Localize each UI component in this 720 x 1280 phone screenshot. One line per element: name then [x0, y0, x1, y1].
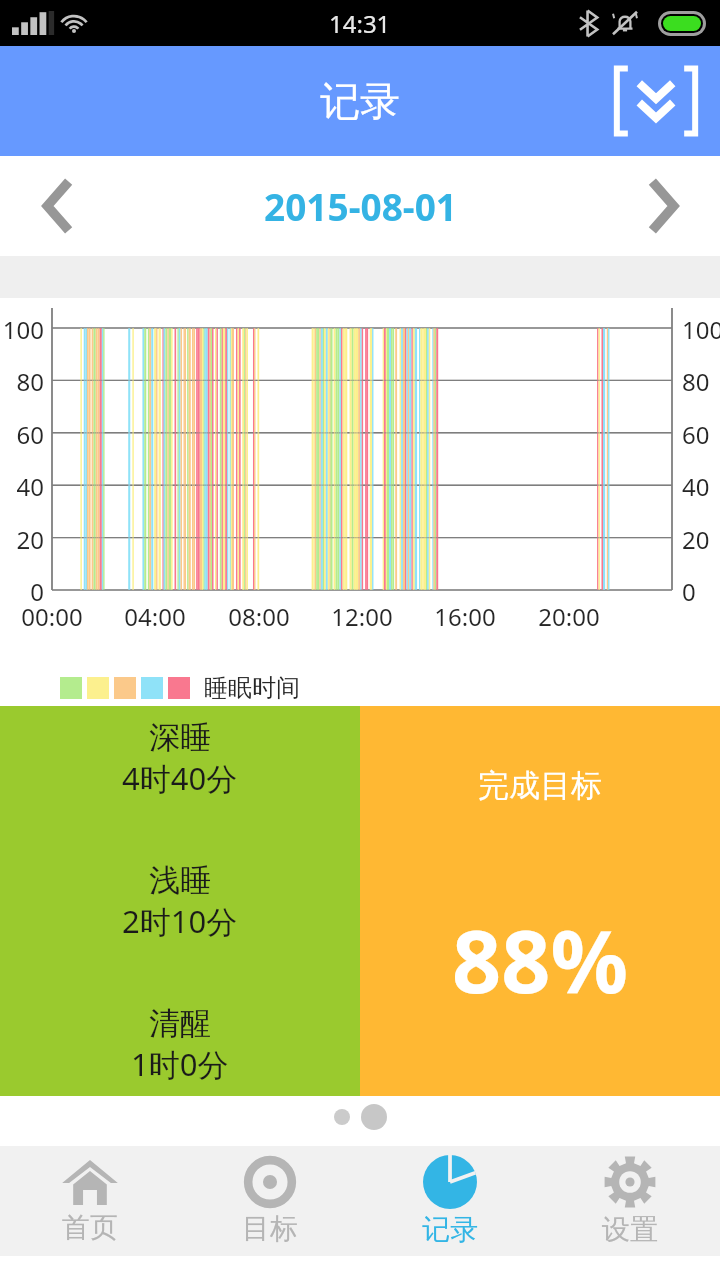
staticText: 20:00 [532, 600, 606, 633]
staticText: 设置 [602, 1212, 658, 1247]
staticText: 4时40分 [122, 757, 238, 799]
button[interactable]: Previous day [0, 156, 115, 256]
staticText: 2015-08-01 [264, 181, 457, 231]
staticText: 16:00 [428, 600, 502, 633]
staticText: 100 [682, 313, 720, 346]
staticText: 20 [682, 523, 710, 556]
staticText: 60 [0, 418, 44, 451]
staticText: 1时0分 [131, 1043, 229, 1085]
staticText: 80 [682, 365, 710, 398]
button[interactable]: 目标 [180, 1146, 360, 1256]
staticText: 12:00 [325, 600, 399, 633]
staticText: 80 [0, 365, 44, 398]
button[interactable]: Next day [605, 156, 720, 256]
staticText: 0 [682, 575, 696, 608]
staticText: 00:00 [15, 600, 89, 633]
button[interactable]: 深睡 [0, 706, 360, 1096]
button[interactable]: 设置 [540, 1146, 720, 1256]
button[interactable]: 记录 [360, 1146, 540, 1256]
staticText: 2时10分 [122, 900, 238, 942]
staticText: 40 [682, 470, 710, 503]
staticText: 88% [452, 901, 628, 1018]
staticText: 0 [0, 575, 44, 608]
staticText: 40 [0, 470, 44, 503]
staticText: 20 [0, 523, 44, 556]
staticText: 目标 [242, 1211, 298, 1246]
staticText: 100 [0, 313, 44, 346]
staticText: 浅睡 [149, 861, 211, 900]
staticText: 记录 [320, 76, 400, 126]
button[interactable]: Expand all [606, 56, 706, 146]
button[interactable]: 完成目标 [360, 706, 720, 1096]
staticText: 完成目标 [478, 766, 602, 805]
staticText: 清醒 [149, 1004, 211, 1043]
staticText: 08:00 [222, 600, 296, 633]
staticText: 深睡 [149, 718, 211, 757]
staticText: 04:00 [118, 600, 192, 633]
staticText: 60 [682, 418, 710, 451]
staticText: 14:31 [329, 7, 391, 40]
staticText: 首页 [62, 1210, 118, 1245]
staticText: 记录 [422, 1212, 478, 1247]
staticText: 睡眠时间 [204, 673, 300, 703]
button[interactable]: 首页 [0, 1146, 180, 1256]
